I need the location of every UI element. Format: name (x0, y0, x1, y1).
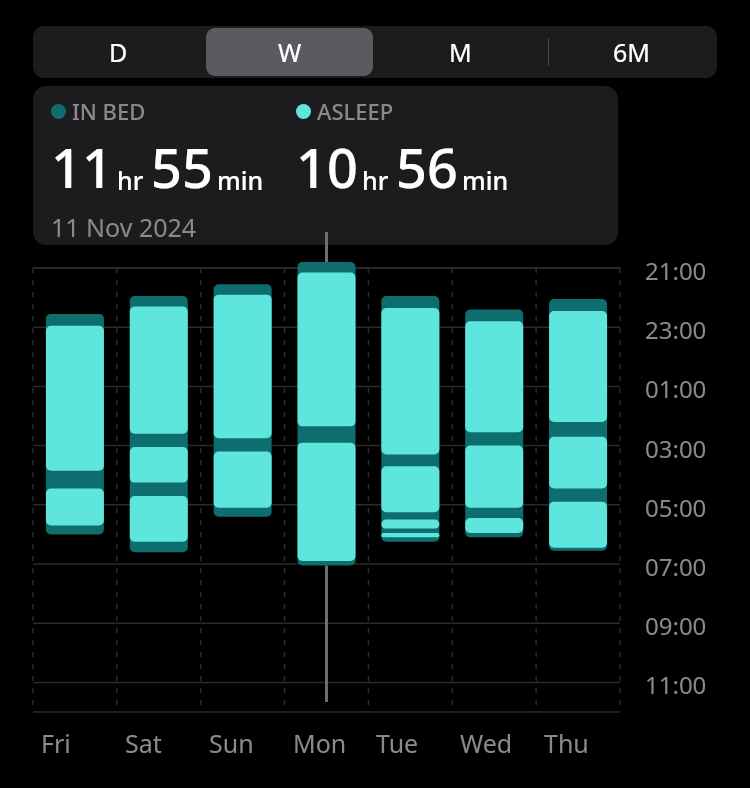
staticText: 11 Nov 2024 (51, 210, 197, 244)
staticText: min (462, 163, 509, 197)
staticText: Sun (209, 726, 254, 760)
staticText: 03:00 (645, 432, 707, 465)
staticText: 10 (296, 130, 358, 204)
staticText: hr (362, 163, 389, 197)
staticText: hr (117, 163, 144, 197)
staticText: W (278, 35, 302, 69)
staticText: 11 (51, 130, 113, 204)
button[interactable]: Wed (460, 726, 536, 760)
button[interactable]: D (35, 28, 202, 76)
button[interactable]: Sun (209, 726, 285, 760)
staticText: 21:00 (645, 254, 707, 287)
button[interactable]: Tue (376, 726, 452, 760)
button[interactable]: M (377, 28, 544, 76)
staticText: Fri (41, 726, 71, 760)
staticText: Mon (293, 726, 347, 760)
button[interactable]: Thu (544, 726, 620, 760)
staticText: Thu (544, 726, 589, 760)
button[interactable]: IN BED (33, 86, 618, 245)
staticText: 56 (396, 130, 458, 204)
staticText: 6M (613, 35, 650, 69)
button[interactable]: Sat (125, 726, 201, 760)
staticText: 23:00 (645, 313, 707, 346)
staticText: min (217, 163, 264, 197)
staticText: 05:00 (645, 491, 707, 524)
staticText: M (449, 35, 472, 69)
staticText: Wed (460, 726, 513, 760)
button[interactable]: W (206, 28, 373, 76)
staticText: IN BED (72, 96, 146, 126)
staticText: 07:00 (645, 550, 707, 583)
button[interactable]: 6M (548, 28, 715, 76)
staticText: 11:00 (645, 668, 707, 701)
staticText: 01:00 (645, 372, 707, 405)
staticText: 55 (151, 130, 213, 204)
staticText: Sat (125, 726, 162, 760)
staticText: Tue (376, 726, 419, 760)
button[interactable]: Fri (41, 726, 117, 760)
staticText: D (109, 35, 128, 69)
staticText: ASLEEP (317, 96, 394, 126)
staticText: 09:00 (645, 609, 707, 642)
button[interactable]: Mon (293, 726, 369, 760)
